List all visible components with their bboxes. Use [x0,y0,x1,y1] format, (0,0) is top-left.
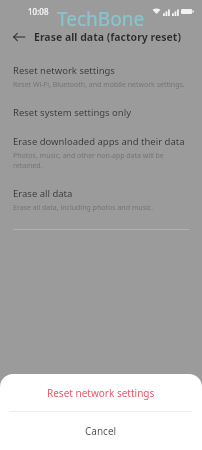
button[interactable]: Cancel [0,412,202,450]
button[interactable]: Erase all data [0,185,202,215]
staticText: Erase all data, including photos and mus… [13,203,154,213]
staticText: 10:08 [28,6,49,17]
staticText: Erase downloaded apps and their data [13,135,185,148]
button[interactable]: Back [8,26,30,48]
button[interactable]: Erase downloaded apps and their data [0,133,202,173]
staticText: TechBone [57,6,145,32]
staticText: Reset network settings [13,64,115,77]
staticText: Photos, music, and other non-app data wi… [13,151,189,171]
button[interactable]: Reset network settings [0,374,202,411]
button[interactable]: Reset system settings only [0,104,202,121]
staticText: Reset network settings [47,386,155,400]
staticText: Reset Wi-Fi, Bluetooth, and mobile netwo… [13,80,185,90]
staticText: Erase all data (factory reset) [34,30,181,44]
staticText: Cancel [85,424,117,438]
button[interactable]: Reset network settings [0,62,202,92]
staticText: Reset system settings only [13,106,132,119]
staticText: Erase all data [13,187,73,200]
